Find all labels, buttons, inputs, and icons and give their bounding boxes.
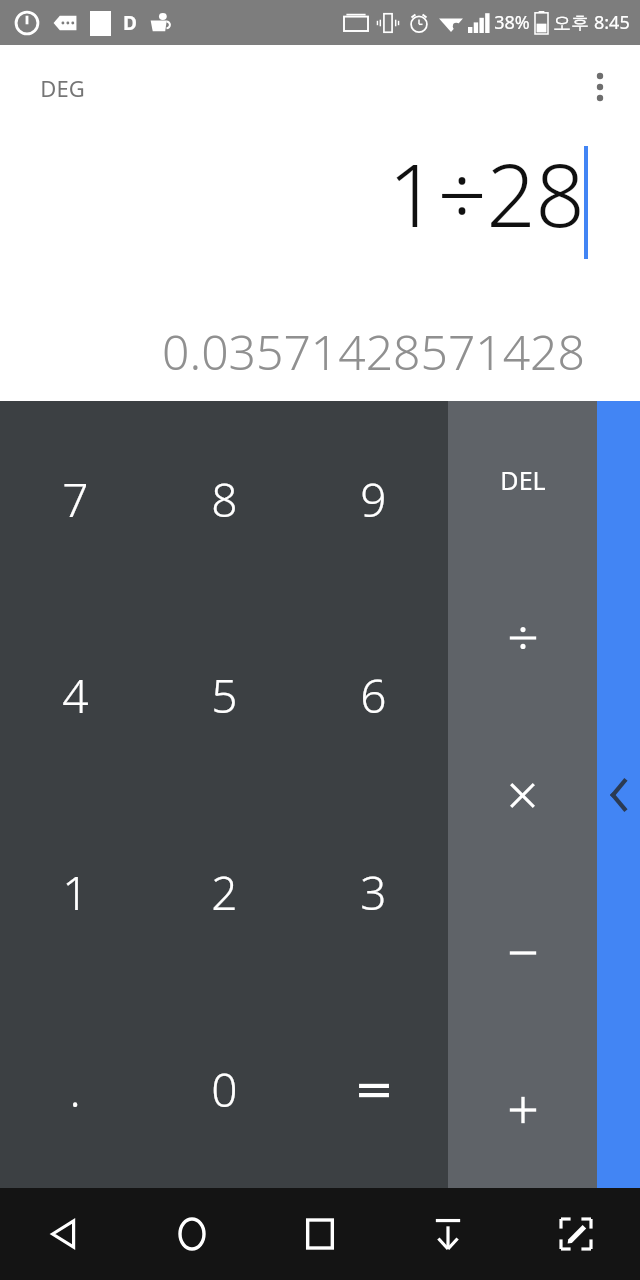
button[interactable]: DEL <box>448 401 597 559</box>
button[interactable]: 4 <box>0 597 150 794</box>
staticText: 38% <box>494 10 530 35</box>
staticText: 0 <box>211 1058 238 1121</box>
button[interactable]: Multiply <box>448 717 597 874</box>
button[interactable]: Home <box>128 1188 256 1280</box>
button[interactable]: Plus <box>448 1031 597 1188</box>
staticText: DEL <box>500 463 546 497</box>
staticText: 9 <box>360 468 387 531</box>
button[interactable]: Recents <box>256 1188 384 1280</box>
button[interactable]: 5 <box>150 597 299 794</box>
staticText: 7 <box>62 468 89 531</box>
staticText: 2 <box>211 861 238 924</box>
button[interactable]: 3 <box>299 794 448 991</box>
button[interactable]: 6 <box>299 597 448 794</box>
button[interactable]: 2 <box>150 794 299 991</box>
staticText: 6 <box>360 664 387 727</box>
staticText: 오후 8:45 <box>553 10 630 35</box>
button[interactable]: 1 <box>0 794 150 991</box>
button[interactable]: . <box>0 991 150 1188</box>
button[interactable]: 0 <box>150 991 299 1188</box>
button[interactable]: 9 <box>299 401 448 597</box>
button[interactable]: Hide navigation bar <box>384 1188 512 1280</box>
staticText: 1 <box>62 861 89 924</box>
button[interactable] <box>299 991 448 1188</box>
button[interactable]: Minus <box>448 874 597 1031</box>
staticText: 1÷28 <box>388 135 585 252</box>
staticText: 5 <box>211 664 238 727</box>
staticText: 8 <box>211 468 238 531</box>
button[interactable]: 7 <box>0 401 150 597</box>
button[interactable]: DEG <box>40 73 85 103</box>
staticText: D <box>123 10 137 36</box>
staticText: 4 <box>62 664 89 727</box>
button[interactable]: Divide <box>448 559 597 717</box>
button[interactable]: More options <box>576 63 624 111</box>
staticText: DEG <box>40 73 85 103</box>
button[interactable]: 8 <box>150 401 299 597</box>
staticText: . <box>69 1058 81 1121</box>
button[interactable]: Open advanced pad <box>597 401 640 1188</box>
staticText: 0.03571428571428 <box>162 319 585 384</box>
button[interactable]: Back <box>0 1188 128 1280</box>
staticText: 3 <box>360 861 387 924</box>
button[interactable]: Capture screen <box>512 1188 640 1280</box>
